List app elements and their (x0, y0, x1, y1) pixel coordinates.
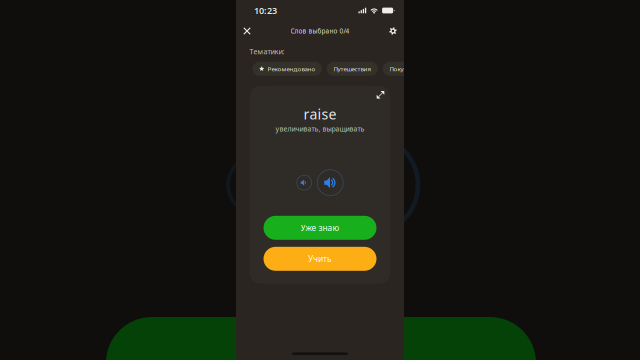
button[interactable]: Play British pronunciation (297, 175, 312, 190)
staticText: 10:23 (254, 4, 277, 17)
button[interactable]: Уже знаю (263, 216, 376, 240)
button[interactable]: Settings (383, 21, 403, 41)
staticText: raise (303, 104, 336, 123)
staticText: Рекомендовано (267, 65, 315, 73)
button[interactable]: Путешествия (327, 62, 378, 76)
staticText: Тематики: (249, 46, 284, 56)
button[interactable]: Play pronunciation (317, 170, 343, 196)
button[interactable]: Покупки (383, 62, 421, 76)
button[interactable]: Учить (263, 247, 376, 271)
button[interactable]: Expand card (374, 88, 387, 101)
staticText: Учить (308, 253, 332, 264)
staticText: Уже знаю (300, 222, 339, 233)
button[interactable]: Close (237, 21, 257, 41)
staticText: Покупки (389, 65, 414, 73)
staticText: Слов выбрано 0/4 (290, 27, 349, 35)
staticText: Путешествия (333, 65, 371, 73)
button[interactable]: Рекомендовано (252, 62, 322, 76)
staticText: увеличивать, выращивать (275, 124, 364, 133)
